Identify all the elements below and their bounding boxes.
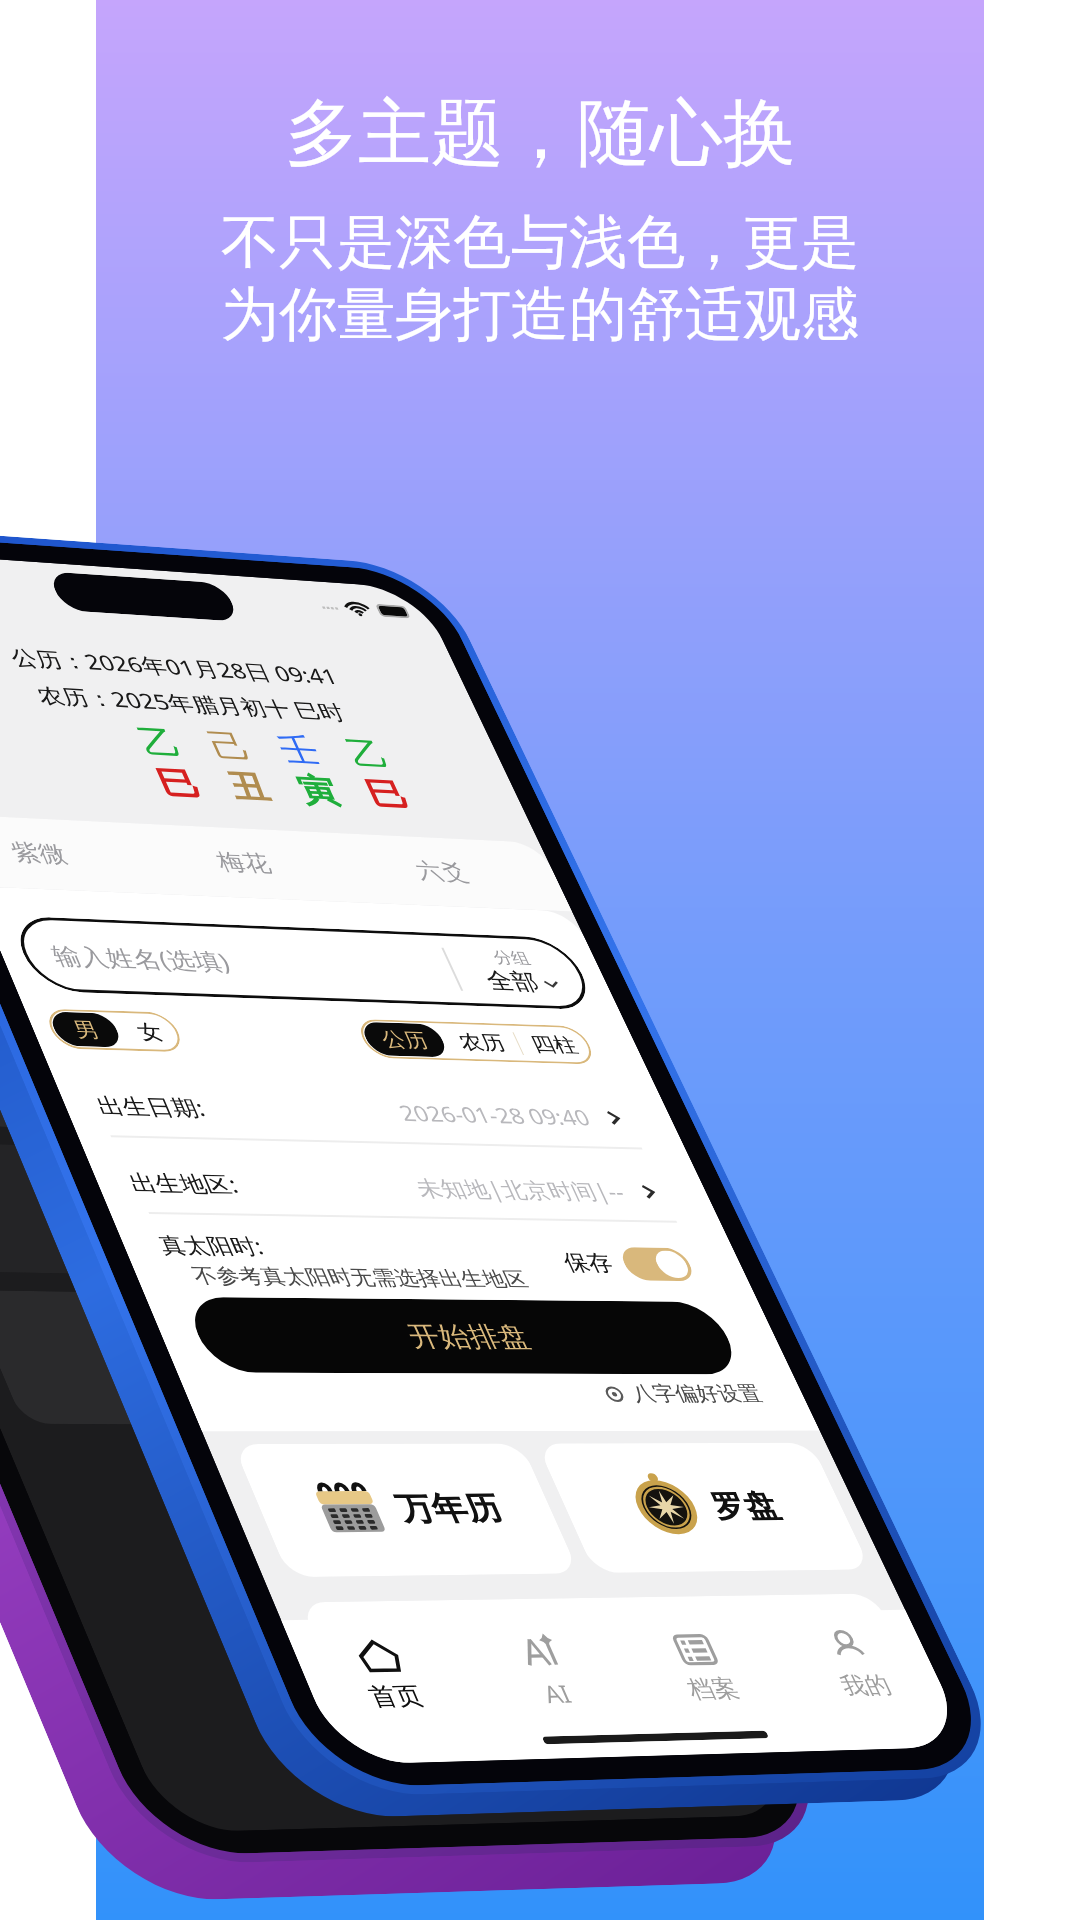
staticText: 2026-01-28 09:40 (394, 1098, 595, 1131)
staticText: 真太阳时: (154, 1230, 268, 1261)
staticText: 我的 (835, 1670, 897, 1701)
button[interactable]: 首页 (285, 1626, 487, 1722)
staticText: AI (537, 1676, 577, 1710)
staticText: 四柱 (527, 1032, 582, 1058)
button[interactable]: 梅花 (164, 825, 324, 901)
staticText: 出生日期: (91, 1089, 209, 1122)
staticText: 乙 (131, 721, 188, 764)
staticText: 梅花 (212, 848, 276, 878)
staticText: 未知地|北京时间|-- (410, 1172, 630, 1205)
staticText: 全部 (481, 967, 544, 996)
button[interactable]: 出生日期: (85, 1075, 636, 1146)
button[interactable]: 六爻 (363, 834, 520, 909)
staticText: 万年历 (390, 1488, 509, 1529)
button[interactable]: 档案 (605, 1621, 801, 1714)
button[interactable]: 输入姓名(选填) (7, 916, 599, 1010)
button[interactable]: 八字偏好设置 (597, 1381, 766, 1406)
staticText: 公历：2026年01月28日 09:41 (0, 633, 470, 697)
staticText: 公历 (376, 1027, 433, 1053)
staticText: 罗盘 (704, 1487, 786, 1526)
staticText: 丑 (220, 766, 277, 809)
staticText: 己 (202, 725, 258, 768)
button[interactable]: 开始排盘 (182, 1297, 745, 1374)
button[interactable]: 万年历 (233, 1443, 579, 1577)
staticText: 出生地区: (123, 1166, 242, 1199)
staticText: 寅 (290, 769, 346, 812)
staticText: 不只是深色与浅色，更是 为你量身打造的舒适观感 (221, 206, 859, 351)
staticText: 六爻 (410, 857, 473, 887)
button[interactable]: 紫微 (0, 815, 121, 892)
staticText: 乙 (340, 733, 396, 775)
button[interactable]: 出生地区: (117, 1151, 671, 1221)
button[interactable]: 我的 (759, 1618, 951, 1710)
staticText: 输入姓名(选填) (46, 939, 459, 985)
button[interactable]: AI (447, 1623, 646, 1718)
staticText: 开始排盘 (402, 1319, 536, 1354)
staticText: 多主题，随心换 (285, 88, 796, 180)
staticText: 不参考真太阳时无需选择出生地区 (188, 1263, 531, 1289)
staticText: 八字偏好设置 (627, 1381, 766, 1407)
button[interactable]: 公历 (354, 1019, 598, 1065)
staticText: 男 (69, 1017, 104, 1043)
staticText: 女 (133, 1019, 167, 1045)
staticText: 紫微 (6, 838, 72, 869)
button[interactable]: 罗盘 (537, 1443, 871, 1573)
staticText: 壬 (271, 729, 327, 771)
staticText: 巳 (150, 762, 206, 805)
staticText: 档案 (682, 1674, 745, 1705)
staticText: 分组 (489, 948, 534, 969)
button[interactable]: 男 (42, 1008, 187, 1052)
staticText: 保存 (558, 1249, 618, 1277)
button[interactable]: 真太阳时: (154, 1230, 702, 1291)
button[interactable]: 保存真太阳时 (617, 1247, 698, 1281)
staticText: 农历 (454, 1029, 510, 1055)
staticText: 首页 (364, 1681, 428, 1713)
staticText: 农历：2025年腊月初十 巳时 (0, 671, 487, 733)
staticText: 巳 (358, 773, 414, 815)
